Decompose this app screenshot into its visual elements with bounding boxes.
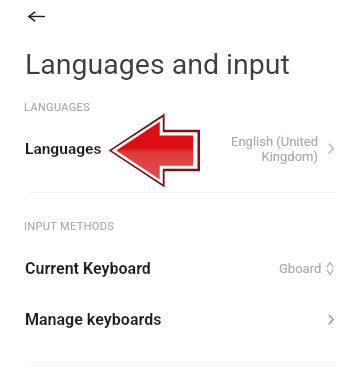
staticText: English (United Kingdom) xyxy=(230,134,318,164)
button[interactable]: Languages xyxy=(0,124,360,173)
staticText: Current Keyboard xyxy=(25,259,151,278)
staticText: Manage keyboards xyxy=(25,310,162,329)
staticText: LANGUAGES xyxy=(24,101,91,114)
button[interactable]: Back xyxy=(16,0,56,32)
button[interactable]: Current Keyboard xyxy=(0,243,360,293)
staticText: Languages xyxy=(25,140,102,158)
staticText: Gboard xyxy=(279,261,322,276)
staticText: INPUT METHODS xyxy=(24,220,115,233)
button[interactable]: Manage keyboards xyxy=(0,294,360,344)
staticText: Languages and input xyxy=(25,48,290,81)
